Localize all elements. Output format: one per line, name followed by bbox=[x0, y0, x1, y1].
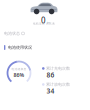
staticText: km bbox=[46, 21, 49, 25]
staticText: 86 bbox=[46, 70, 54, 79]
staticText: 续航里程 已充满 bbox=[33, 22, 55, 25]
staticText: 电池状态 bbox=[4, 31, 20, 36]
staticText: 0 bbox=[41, 15, 46, 26]
staticText: 电池健康度 bbox=[11, 68, 26, 71]
staticText: 86% bbox=[13, 71, 24, 78]
staticText: 累计充电次数 bbox=[46, 66, 70, 71]
staticText: 电池使用状况 bbox=[8, 45, 32, 50]
staticText: 累计放电次数 bbox=[46, 82, 70, 87]
staticText: 34 bbox=[46, 86, 54, 95]
